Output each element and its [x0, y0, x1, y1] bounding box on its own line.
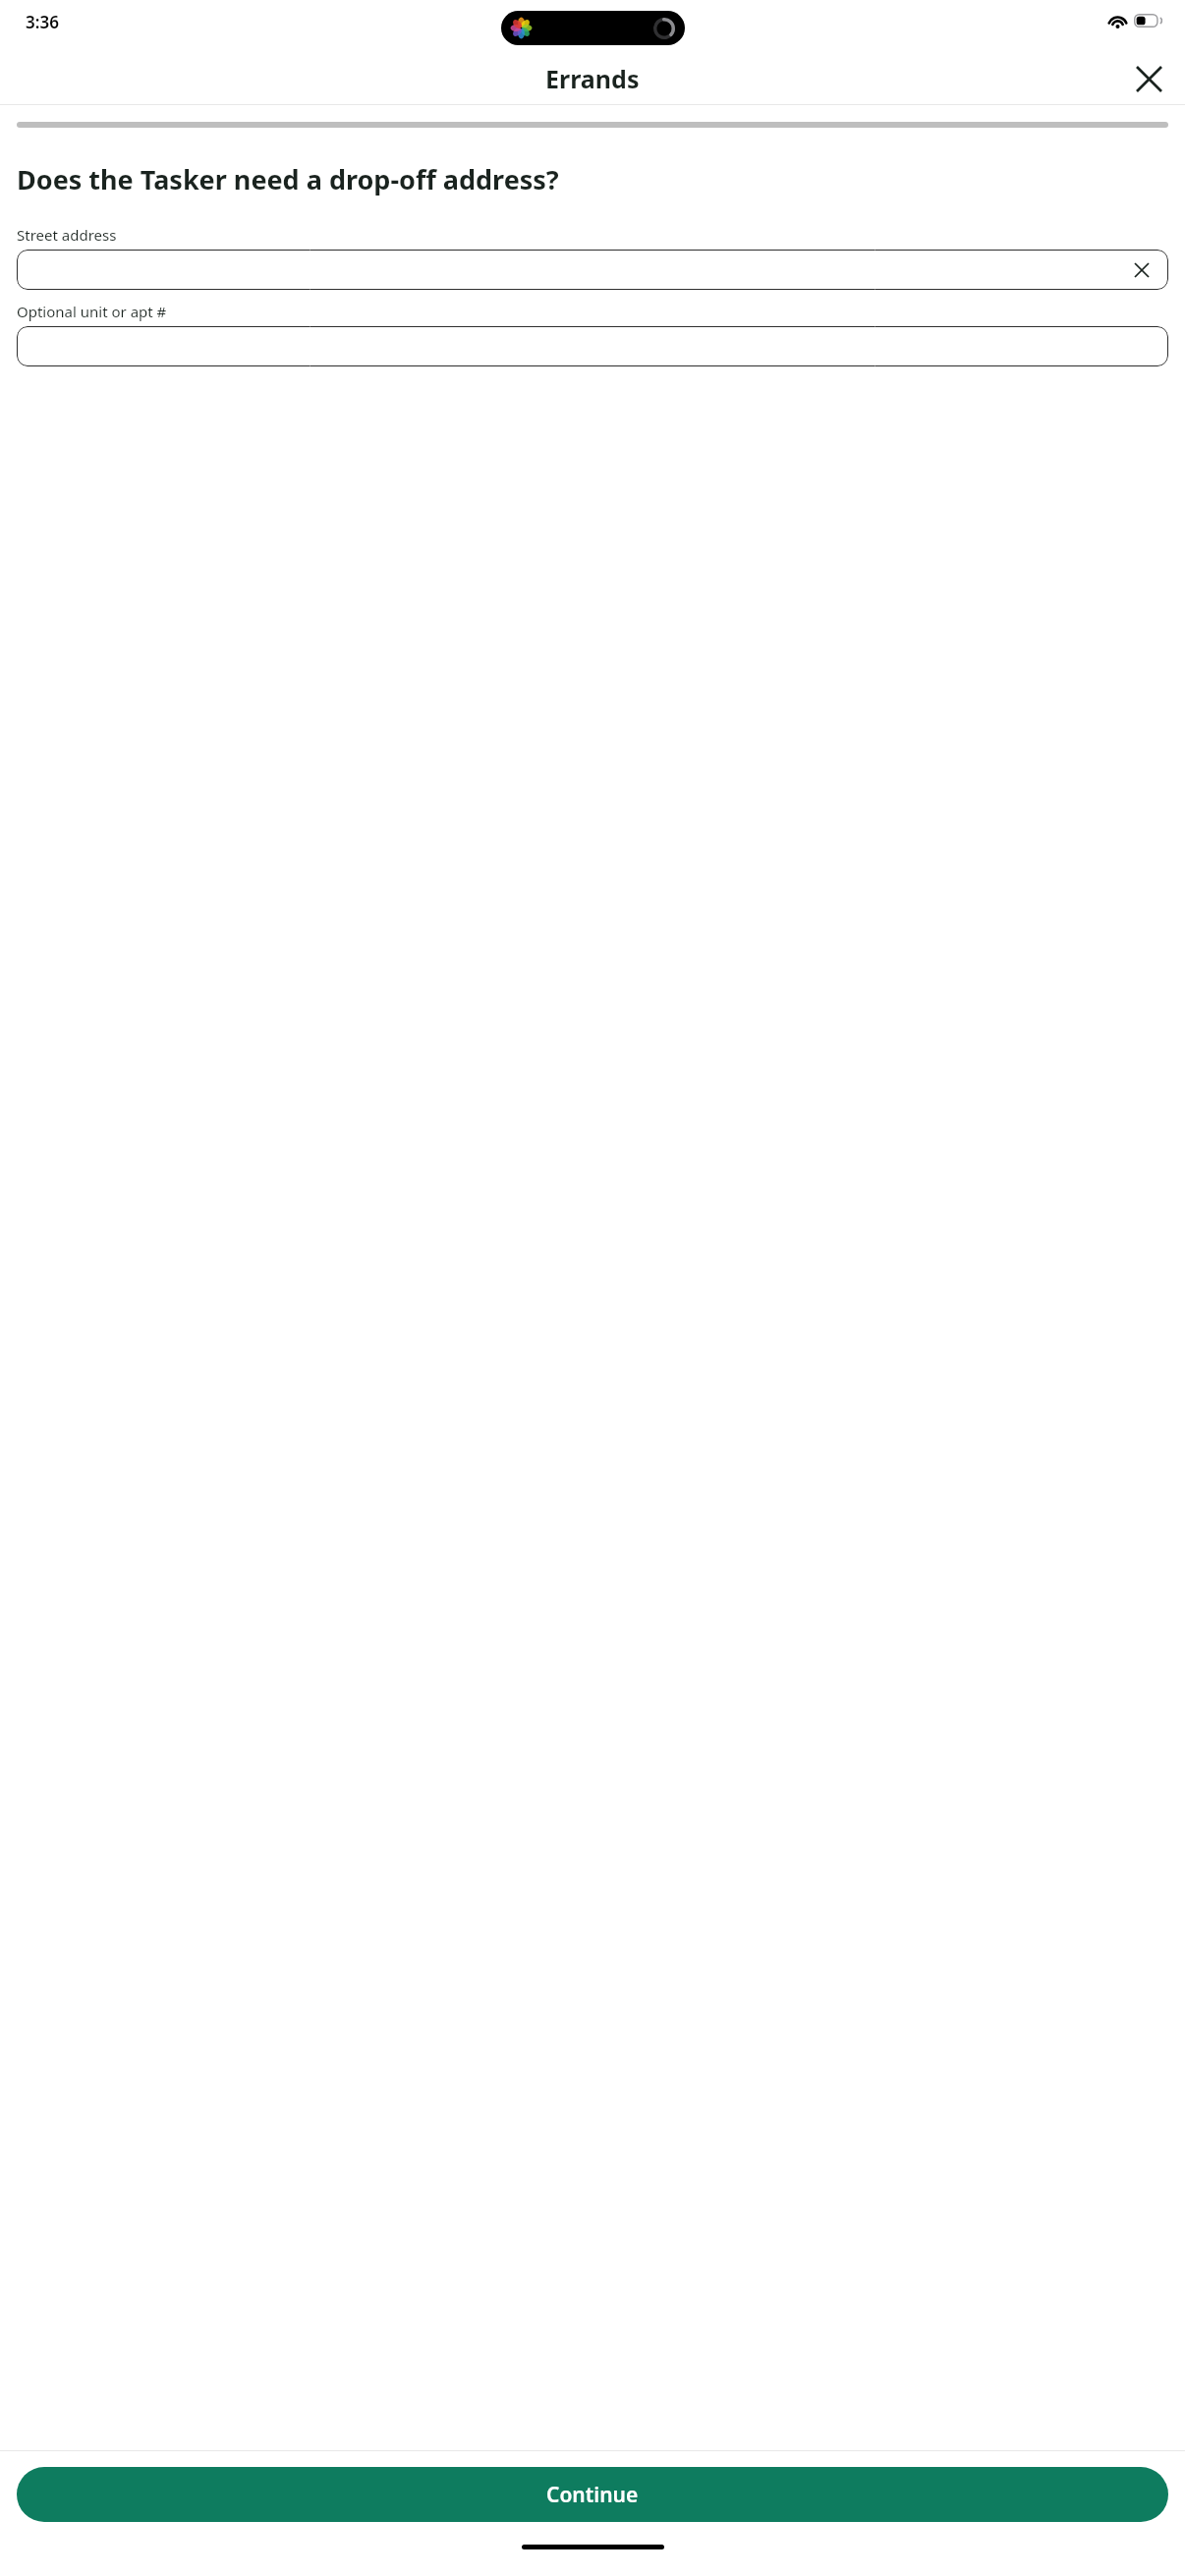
button[interactable]: Close	[1123, 53, 1174, 104]
staticText: Errands	[545, 62, 640, 95]
button[interactable]	[17, 326, 1168, 366]
button[interactable]: Continue	[17, 2467, 1168, 2522]
button[interactable]: Clear street address	[17, 250, 1168, 290]
staticText: Does the Tasker need a drop-off address?	[17, 161, 1168, 197]
button[interactable]: Clear street address	[1128, 256, 1156, 284]
staticText: Street address	[17, 225, 117, 245]
staticText: Optional unit or apt #	[17, 302, 167, 321]
staticText: Continue	[546, 2481, 639, 2509]
staticText: 3:36	[26, 11, 59, 33]
